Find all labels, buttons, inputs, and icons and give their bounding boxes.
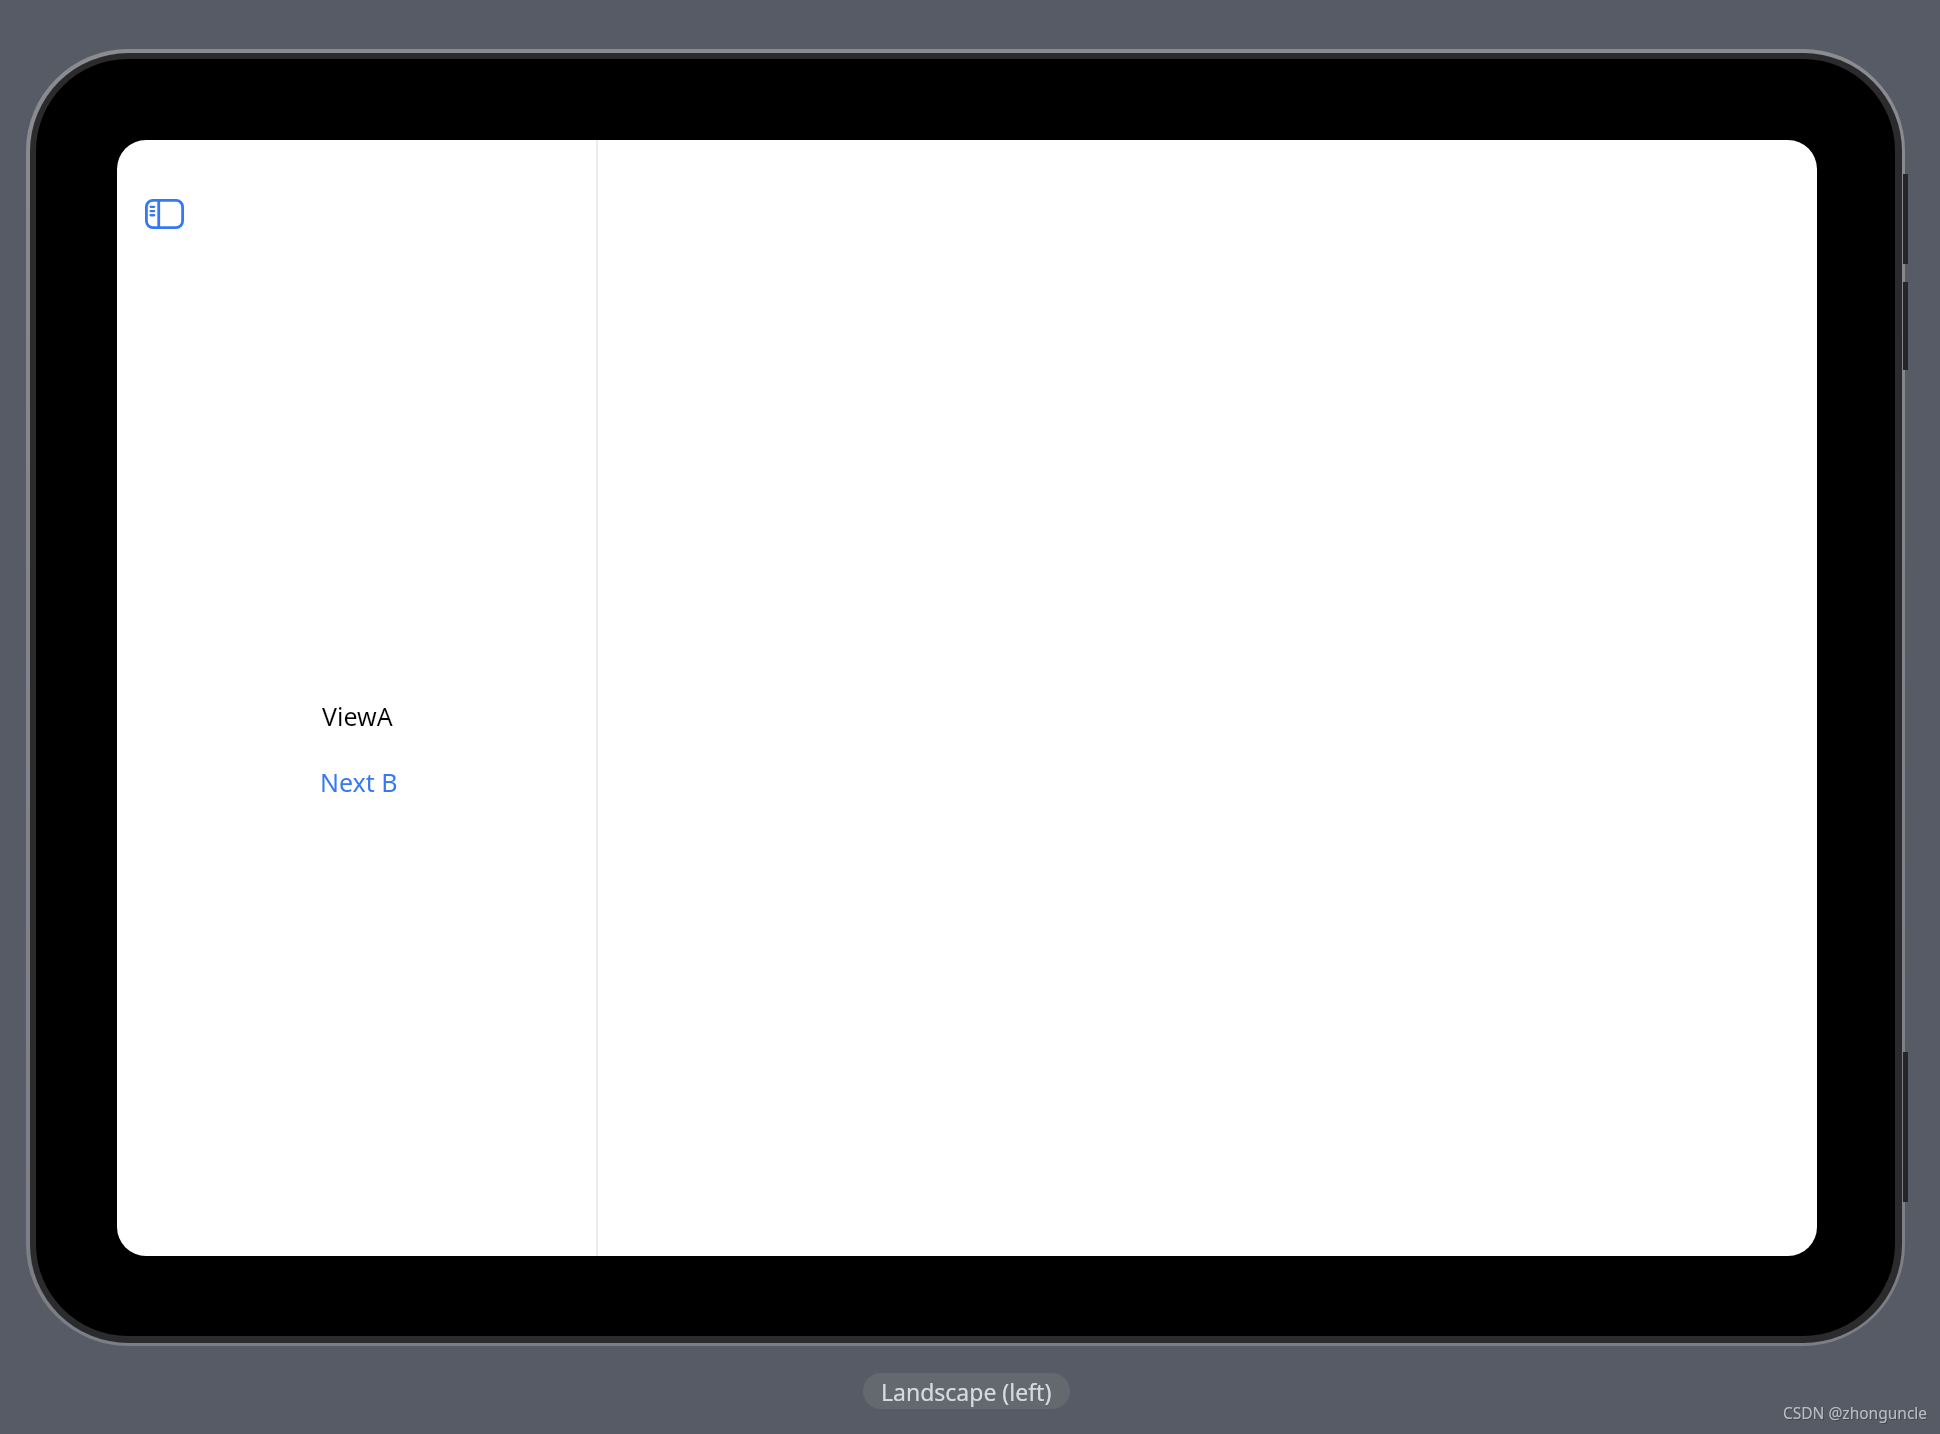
- staticText: Landscape (left): [881, 1376, 1052, 1407]
- staticText: ViewA: [322, 699, 393, 733]
- staticText: Next B: [320, 765, 398, 799]
- button[interactable]: Next B: [320, 765, 398, 799]
- staticText: CSDN @zhonguncle: [1784, 1403, 1929, 1424]
- button[interactable]: Landscape (left): [863, 1373, 1070, 1409]
- button[interactable]: Toggle sidebar: [137, 191, 191, 237]
- staticText: CSDN @zhonguncle: [1783, 1402, 1928, 1423]
